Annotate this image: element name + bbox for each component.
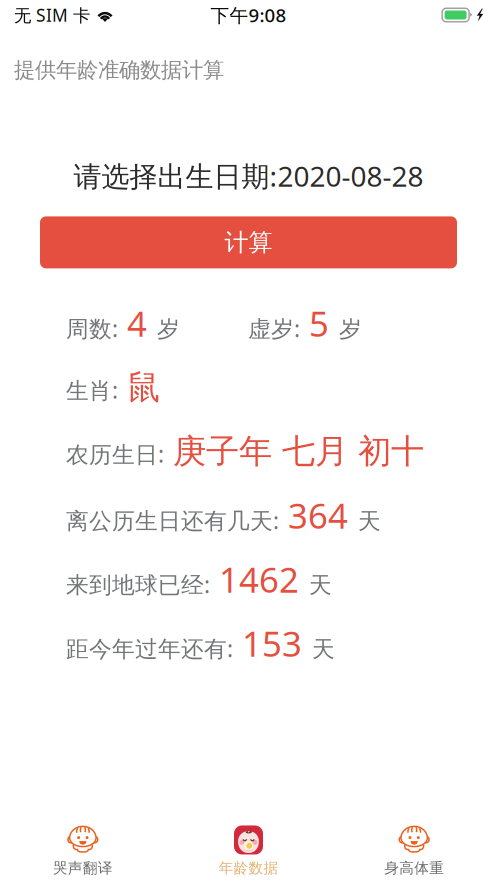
- staticText: 计算: [224, 228, 272, 257]
- staticText: 岁: [157, 315, 180, 343]
- staticText: 153: [242, 620, 302, 666]
- staticText: 虚岁:: [248, 313, 300, 343]
- staticText: 天: [309, 571, 332, 599]
- staticText: 离公历生日还有几天:: [66, 505, 279, 535]
- staticText: 岁: [339, 315, 362, 343]
- staticText: 请选择出生日期:2020-08-28: [73, 157, 423, 194]
- staticText: 364: [288, 492, 348, 538]
- staticText: 5: [309, 300, 329, 346]
- staticText: 1462: [219, 556, 299, 602]
- staticText: 周数:: [66, 313, 118, 343]
- staticText: 天: [358, 507, 381, 535]
- button[interactable]: 年龄数据: [166, 808, 331, 883]
- staticText: 哭声翻译: [53, 859, 113, 877]
- staticText: 提供年龄准确数据计算: [14, 57, 224, 83]
- staticText: 无 SIM 卡: [14, 3, 90, 26]
- staticText: 下午9:08: [210, 3, 286, 27]
- staticText: 来到地球已经:: [66, 569, 210, 599]
- staticText: 距今年过年还有:: [66, 633, 233, 663]
- button[interactable]: 哭声翻译: [0, 808, 166, 883]
- button[interactable]: 请选择出生日期:2020-08-28: [0, 157, 497, 194]
- button[interactable]: 身高体重: [331, 808, 497, 883]
- staticText: 4: [127, 300, 147, 346]
- staticText: 农历生日:: [66, 439, 164, 469]
- staticText: 鼠: [127, 367, 160, 408]
- button[interactable]: 计算: [40, 216, 457, 268]
- staticText: 天: [312, 635, 335, 663]
- staticText: 生肖:: [66, 375, 118, 405]
- staticText: 庚子年 七月 初十: [173, 431, 424, 472]
- staticText: 身高体重: [384, 859, 444, 877]
- staticText: 年龄数据: [218, 859, 278, 877]
